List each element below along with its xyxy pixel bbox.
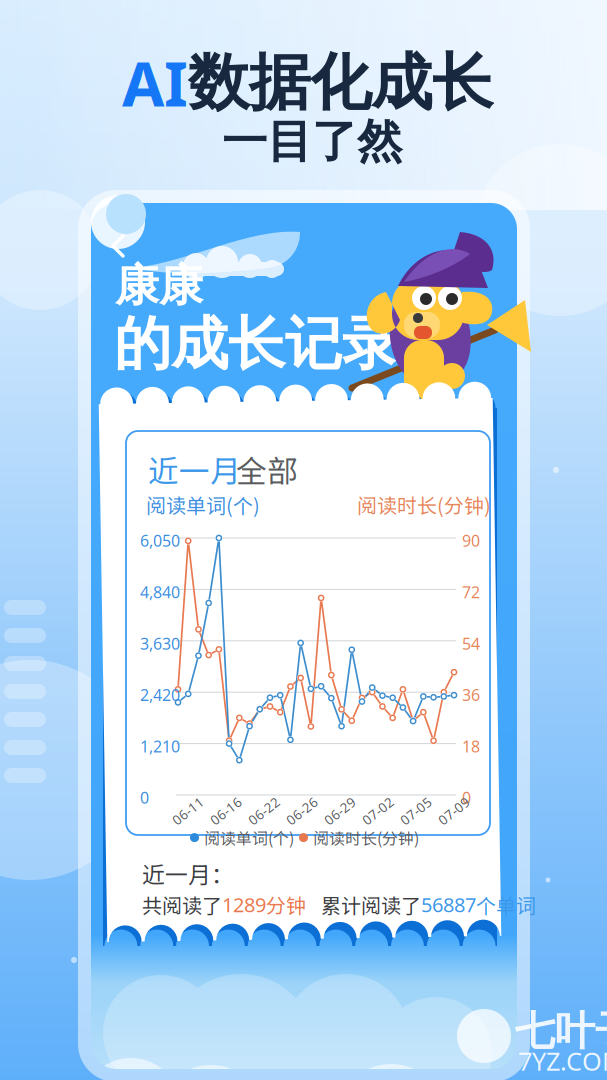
staticText: 个单词	[476, 890, 536, 919]
staticText: 2,420	[140, 684, 180, 705]
staticText: 56887	[421, 891, 476, 918]
staticText: 06-11	[170, 802, 206, 820]
staticText: 七叶子	[515, 1006, 607, 1056]
staticText: 1,210	[140, 736, 180, 757]
staticText: 累计阅读了	[321, 890, 421, 919]
staticText: 18	[462, 736, 480, 757]
staticText: 7YZ.COM	[518, 1044, 607, 1078]
staticText: 近一月：	[142, 857, 234, 890]
staticText: 1289	[222, 891, 266, 918]
staticText: 6,050	[140, 530, 180, 551]
staticText: 阅读单词(个)	[204, 826, 294, 849]
staticText: 06-26	[284, 802, 320, 820]
staticText: 07-05	[398, 802, 434, 820]
staticText: 近一月	[148, 447, 241, 491]
staticText: 54	[462, 633, 480, 654]
button[interactable]: Back	[0, 0, 607, 1080]
staticText: 07-09	[436, 802, 472, 820]
staticText: 72	[462, 581, 480, 603]
staticText: 全部	[236, 447, 298, 491]
staticText: 4,840	[140, 581, 180, 603]
staticText: 0	[462, 787, 471, 808]
staticText: AI	[122, 41, 188, 124]
staticText: 07-02	[360, 802, 396, 820]
button[interactable]: 近一月	[146, 443, 243, 495]
staticText: 3,630	[140, 633, 180, 654]
staticText: 共阅读了	[142, 890, 222, 919]
button[interactable]: 全部	[234, 443, 300, 495]
staticText: 90	[462, 530, 480, 551]
staticText: 的成长记录	[114, 308, 399, 380]
staticText: 0	[140, 787, 149, 808]
staticText: 06-16	[208, 802, 244, 820]
staticText: 06-22	[246, 802, 282, 820]
staticText: 康康	[115, 258, 203, 313]
staticText: 阅读时长(分钟)	[313, 826, 419, 849]
staticText: 阅读时长(分钟)	[357, 490, 491, 519]
staticText: 分钟	[266, 890, 306, 919]
staticText: 36	[462, 684, 480, 705]
staticText: 阅读单词(个)	[146, 490, 260, 519]
staticText: 数据化成长	[188, 44, 493, 121]
staticText: 一目了然	[222, 113, 402, 170]
staticText: 06-29	[322, 802, 358, 820]
